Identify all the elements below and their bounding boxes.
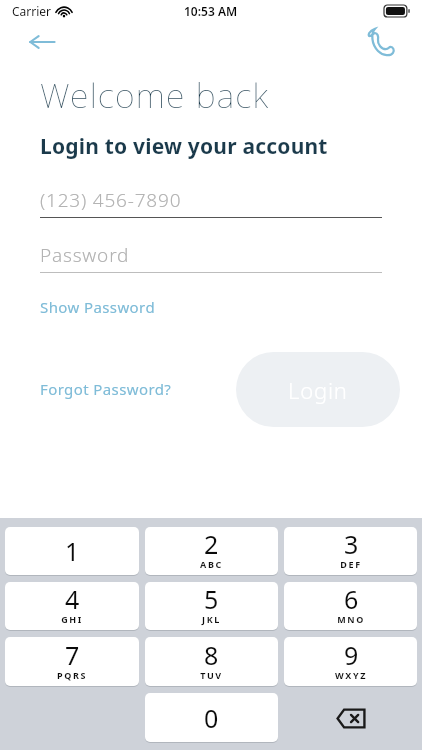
staticText: Carrier	[12, 3, 52, 19]
staticText: 9	[344, 638, 359, 672]
staticText: DEF	[340, 558, 362, 570]
staticText: PQRS	[57, 669, 87, 681]
button[interactable]: Call	[360, 22, 402, 62]
button[interactable]: 4	[5, 582, 139, 630]
button[interactable]: Backspace	[284, 690, 417, 746]
button[interactable]: 6	[284, 582, 417, 630]
staticText: JKL	[202, 613, 221, 625]
button[interactable]: 1	[5, 527, 139, 575]
button[interactable]: 7	[5, 637, 139, 686]
button[interactable]: 0	[145, 693, 278, 742]
button[interactable]: 9	[284, 637, 417, 686]
button[interactable]: Password	[40, 242, 382, 273]
button[interactable]: (123) 456-7890	[40, 187, 382, 218]
staticText: Password	[40, 242, 130, 268]
button[interactable]: 2	[145, 527, 278, 575]
button[interactable]: Back	[22, 22, 62, 62]
staticText: 4	[65, 582, 80, 616]
staticText: Forgot Password?	[40, 379, 172, 399]
staticText: 7	[65, 638, 80, 672]
staticText: GHI	[61, 613, 83, 625]
staticText: MNO	[337, 613, 365, 625]
staticText: WXYZ	[335, 669, 367, 681]
staticText: 8	[204, 638, 219, 672]
button[interactable]: Forgot Password?	[40, 375, 172, 403]
button[interactable]: Show Password	[40, 295, 156, 319]
staticText: 2	[204, 527, 219, 561]
staticText: 0	[204, 701, 219, 735]
staticText: 6	[344, 582, 359, 616]
staticText: 3	[344, 527, 359, 561]
staticText: 1	[65, 534, 80, 568]
staticText: Show Password	[40, 297, 156, 317]
staticText: Login	[288, 375, 348, 405]
staticText: 10:53 AM	[184, 3, 238, 19]
staticText: ABC	[200, 558, 223, 570]
button[interactable]: 3	[284, 527, 417, 575]
staticText: Welcome back	[40, 72, 270, 118]
staticText: (123) 456-7890	[40, 187, 182, 213]
staticText: TUV	[200, 669, 223, 681]
button[interactable]: 8	[145, 637, 278, 686]
staticText: Login to view your account	[40, 132, 328, 161]
staticText: 5	[204, 582, 219, 616]
button[interactable]: Login	[236, 352, 400, 427]
button[interactable]: 5	[145, 582, 278, 630]
